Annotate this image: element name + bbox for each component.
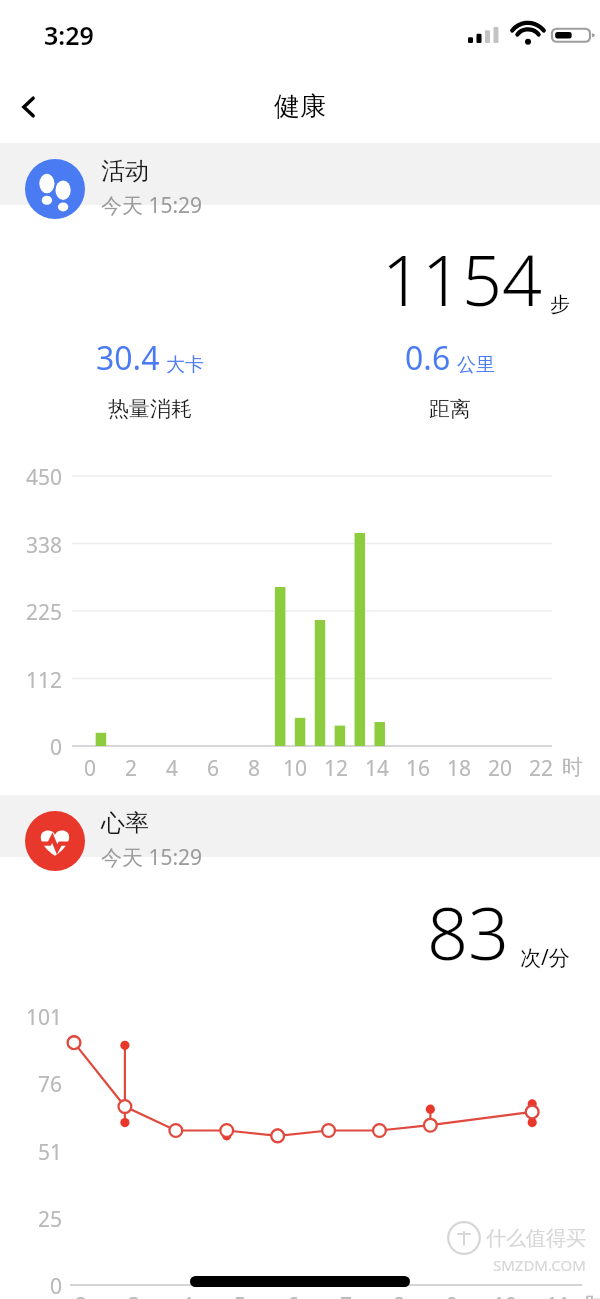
staticText: 30.4: [96, 336, 160, 380]
staticText: 76: [0, 1070, 62, 1099]
staticText: 今天 15:29: [101, 843, 203, 872]
staticText: 健康: [274, 90, 326, 123]
staticText: 次/分: [520, 943, 570, 972]
staticText: 心率: [101, 808, 149, 838]
staticText: 25: [0, 1205, 62, 1234]
staticText: 14: [365, 754, 390, 783]
staticText: 时: [585, 1291, 594, 1299]
button[interactable]: Back: [0, 78, 58, 136]
staticText: 22: [529, 754, 554, 783]
staticText: 热量消耗: [108, 396, 192, 422]
staticText: 16: [406, 754, 431, 783]
staticText: 83: [427, 883, 510, 981]
staticText: 10: [283, 754, 308, 783]
staticText: 距离: [429, 396, 471, 422]
staticText: 112: [0, 666, 62, 695]
staticText: 18: [447, 754, 472, 783]
staticText: 3: [128, 1291, 141, 1299]
button[interactable]: 30.4: [0, 336, 300, 422]
staticText: 什么值得买: [486, 1226, 586, 1251]
staticText: 10: [493, 1291, 518, 1299]
staticText: 步: [550, 292, 570, 317]
staticText: 101: [0, 1003, 62, 1032]
staticText: 225: [0, 598, 62, 627]
staticText: 8: [248, 754, 261, 783]
staticText: 0: [84, 754, 97, 783]
staticText: 3:29: [44, 18, 94, 52]
staticText: 4: [181, 1291, 194, 1299]
staticText: 2: [75, 1291, 88, 1299]
button[interactable]: 活动: [0, 143, 600, 231]
staticText: 9: [446, 1291, 459, 1299]
staticText: 6: [207, 754, 220, 783]
staticText: 5: [234, 1291, 247, 1299]
staticText: 时: [562, 754, 582, 780]
staticText: 活动: [101, 156, 149, 186]
staticText: 大卡: [166, 353, 204, 377]
staticText: 0: [0, 733, 62, 762]
staticText: 11: [546, 1291, 571, 1299]
staticText: 2: [125, 754, 138, 783]
staticText: 4: [166, 754, 179, 783]
staticText: 8: [393, 1291, 406, 1299]
button[interactable]: 心率: [0, 795, 600, 883]
staticText: 51: [0, 1138, 62, 1167]
staticText: 338: [0, 531, 62, 560]
staticText: 6: [287, 1291, 300, 1299]
staticText: 1154: [382, 231, 542, 326]
staticText: 7: [340, 1291, 353, 1299]
staticText: 0.6: [405, 336, 451, 380]
staticText: 450: [0, 463, 62, 492]
button[interactable]: 0.6: [300, 336, 600, 422]
staticText: SMZDM.COM: [493, 1255, 586, 1275]
staticText: 12: [324, 754, 349, 783]
staticText: 20: [488, 754, 513, 783]
staticText: 今天 15:29: [101, 191, 203, 220]
staticText: 0: [0, 1272, 62, 1299]
staticText: 公里: [457, 353, 495, 377]
